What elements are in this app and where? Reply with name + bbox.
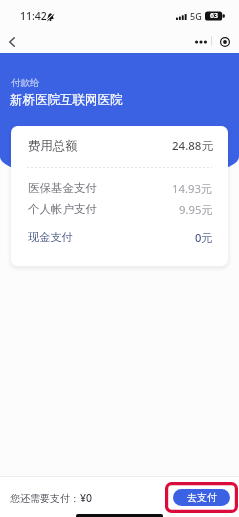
- staticText: 去支付: [187, 491, 217, 504]
- staticText: 医保基金支付: [28, 181, 97, 195]
- staticText: 现金支付: [28, 230, 73, 244]
- staticText: 费用总额: [28, 138, 78, 154]
- staticText: 9.95元: [179, 202, 213, 217]
- staticText: 24.88元: [172, 138, 213, 154]
- staticText: 个人帐户支付: [28, 202, 97, 216]
- staticText: 0元: [195, 230, 213, 245]
- button[interactable]: Back: [0, 30, 23, 53]
- staticText: 新桥医院互联网医院: [10, 92, 123, 108]
- button[interactable]: Close: [215, 32, 234, 51]
- staticText: 11:42: [20, 9, 47, 23]
- staticText: 14.93元: [172, 181, 213, 196]
- staticText: ¥0: [80, 491, 93, 505]
- button[interactable]: 您还需要支付：: [10, 490, 93, 506]
- staticText: 付款给: [11, 77, 40, 89]
- button[interactable]: 去支付: [173, 489, 230, 506]
- button[interactable]: More options: [190, 32, 212, 51]
- staticText: 您还需要支付：: [10, 492, 80, 505]
- staticText: 63: [210, 11, 219, 21]
- staticText: 5G: [190, 10, 202, 22]
